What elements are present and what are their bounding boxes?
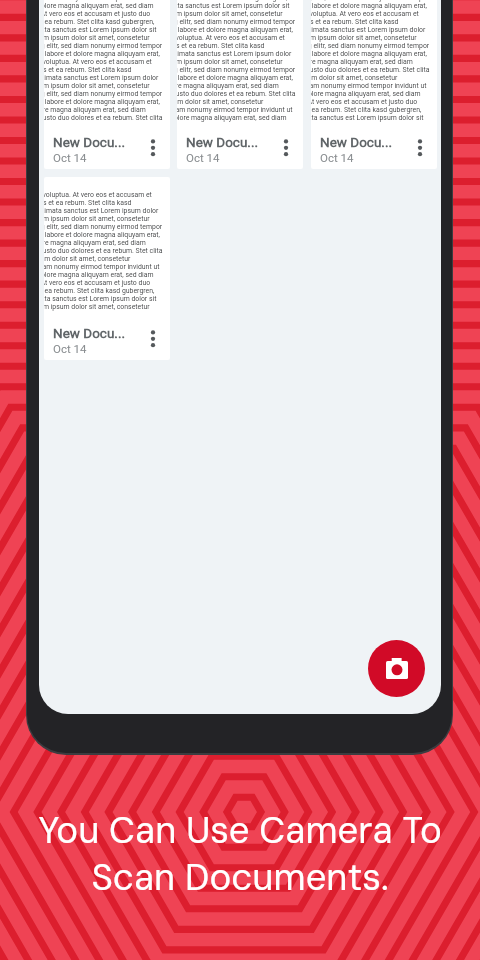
staticText: ut labore et dolore magna aliquyam erat,… xyxy=(44,231,163,239)
staticText: dolore magna aliquyam erat, sed diam vol… xyxy=(44,2,163,10)
staticText: . At vero eos et accusam et justo duo do… xyxy=(44,10,163,18)
staticText: ut labore et dolore magna aliquyam erat,… xyxy=(311,2,430,10)
staticText: rem ipsum dolor sit amet, consetetur sad… xyxy=(44,82,163,90)
staticText: ng elitr, sed diam nonumy eirmod tempor … xyxy=(311,42,430,50)
staticText: diam nonumy eirmod tempor invidunt ut la… xyxy=(311,82,430,90)
staticText: akimata sanctus est Lorem ipsum dolor si… xyxy=(44,74,163,82)
staticText: akimata sanctus est Lorem ipsum dolor si… xyxy=(177,50,296,58)
button[interactable]: More options xyxy=(274,137,298,161)
button[interactable]: More options xyxy=(141,328,165,352)
button[interactable]: . At vero eos et accusam et justo duo do… xyxy=(177,0,303,169)
button[interactable]: n voluptua. At vero eos et accusam et ju… xyxy=(44,177,170,360)
staticText: ut labore et dolore magna aliquyam erat,… xyxy=(44,50,163,58)
staticText: Oct 14 xyxy=(53,342,87,355)
staticText: res et ea rebum. Stet clita kasd gubergr… xyxy=(44,199,163,207)
staticText: rem ipsum dolor sit amet, consetetur sad… xyxy=(44,303,163,311)
staticText: res et ea rebum. Stet clita kasd gubergr… xyxy=(177,42,296,50)
staticText: diam nonumy eirmod tempor invidunt ut la… xyxy=(44,263,163,271)
staticText: ut labore et dolore magna aliquyam erat,… xyxy=(177,74,296,82)
staticText: diam nonumy eirmod tempor invidunt ut la… xyxy=(44,0,163,2)
staticText: lore magna aliquyam erat, sed diam volup… xyxy=(44,106,163,114)
staticText: t justo duo dolores et ea rebum. Stet cl… xyxy=(311,66,430,74)
staticText: Oct 14 xyxy=(320,151,354,164)
staticText: et ea rebum. Stet clita kasd gubergren, … xyxy=(44,287,163,295)
staticText: akimata sanctus est Lorem ipsum dolor si… xyxy=(311,26,430,34)
staticText: New Docu... xyxy=(320,134,393,150)
staticText: rem ipsum dolor sit amet, consetetur sad… xyxy=(177,10,296,18)
staticText: ut labore et dolore magna aliquyam erat,… xyxy=(44,98,163,106)
staticText: n voluptua. At vero eos et accusam et ju… xyxy=(311,10,430,18)
staticText: New Docu... xyxy=(186,134,259,150)
staticText: New Docu... xyxy=(53,325,126,341)
button[interactable]: sum dolor sit amet, consetetur sadipscin… xyxy=(44,0,170,169)
staticText: ng elitr, sed diam nonumy eirmod tempor … xyxy=(177,18,296,26)
staticText: et ea rebum. Stet clita kasd gubergren, … xyxy=(44,18,163,26)
staticText: diam nonumy eirmod tempor invidunt ut la… xyxy=(177,106,296,114)
staticText: et ea rebum. Stet clita kasd gubergren, … xyxy=(177,0,296,2)
staticText: rem ipsum dolor sit amet, consetetur sad… xyxy=(44,34,163,42)
staticText: nata sanctus est Lorem ipsum dolor sit a… xyxy=(44,26,163,34)
staticText: t justo duo dolores et ea rebum. Stet cl… xyxy=(177,90,296,98)
staticText: ng elitr, sed diam nonumy eirmod tempor … xyxy=(44,90,163,98)
staticText: sum dolor sit amet, consetetur sadipscin… xyxy=(177,98,296,106)
staticText: New Docu... xyxy=(53,134,126,150)
staticText: nata sanctus est Lorem ipsum dolor sit a… xyxy=(44,295,163,303)
button[interactable]: Scan document with camera xyxy=(368,640,425,697)
staticText: . At vero eos et accusam et justo duo do… xyxy=(311,98,430,106)
button[interactable]: rem ipsum dolor sit amet, consetetur sad… xyxy=(311,0,437,169)
staticText: res et ea rebum. Stet clita kasd gubergr… xyxy=(44,66,163,74)
staticText: ng elitr, sed diam nonumy eirmod tempor … xyxy=(44,42,163,50)
button[interactable]: More options xyxy=(408,137,432,161)
staticText: dolore magna aliquyam erat, sed diam vol… xyxy=(311,90,430,98)
staticText: You Can Use Camera To Scan Documents. xyxy=(38,807,442,901)
staticText: n voluptua. At vero eos et accusam et ju… xyxy=(44,191,163,199)
staticText: rem ipsum dolor sit amet, consetetur sad… xyxy=(311,34,430,42)
staticText: dolore magna aliquyam erat, sed diam vol… xyxy=(177,114,296,122)
staticText: n voluptua. At vero eos et accusam et ju… xyxy=(44,58,163,66)
staticText: res et ea rebum. Stet clita kasd gubergr… xyxy=(311,18,430,26)
staticText: sum dolor sit amet, consetetur sadipscin… xyxy=(44,255,163,263)
staticText: n voluptua. At vero eos et accusam et ju… xyxy=(177,34,296,42)
button[interactable]: More options xyxy=(141,137,165,161)
staticText: ng elitr, sed diam nonumy eirmod tempor … xyxy=(177,66,296,74)
staticText: nata sanctus est Lorem ipsum dolor sit a… xyxy=(177,2,296,10)
staticText: lore magna aliquyam erat, sed diam volup… xyxy=(311,58,430,66)
staticText: t justo duo dolores et ea rebum. Stet cl… xyxy=(44,247,163,255)
staticText: rem ipsum dolor sit amet, consetetur sad… xyxy=(44,215,163,223)
staticText: rem ipsum dolor sit amet, consetetur sad… xyxy=(177,58,296,66)
staticText: lore magna aliquyam erat, sed diam volup… xyxy=(177,82,296,90)
staticText: sum dolor sit amet, consetetur sadipscin… xyxy=(311,74,430,82)
staticText: ut labore et dolore magna aliquyam erat,… xyxy=(311,50,430,58)
staticText: akimata sanctus est Lorem ipsum dolor si… xyxy=(44,207,163,215)
staticText: ng elitr, sed diam nonumy eirmod tempor … xyxy=(44,223,163,231)
staticText: ng elitr, sed diam nonumy eirmod tempor … xyxy=(311,0,430,2)
staticText: lore magna aliquyam erat, sed diam volup… xyxy=(44,239,163,247)
staticText: t justo duo dolores et ea rebum. Stet cl… xyxy=(44,114,163,122)
staticText: ut labore et dolore magna aliquyam erat,… xyxy=(177,26,296,34)
staticText: dolore magna aliquyam erat, sed diam vol… xyxy=(44,271,163,279)
staticText: et ea rebum. Stet clita kasd gubergren, … xyxy=(311,106,430,114)
staticText: . At vero eos et accusam et justo duo do… xyxy=(44,279,163,287)
staticText: Oct 14 xyxy=(186,151,220,164)
staticText: nata sanctus est Lorem ipsum dolor sit a… xyxy=(311,114,430,122)
staticText: Oct 14 xyxy=(53,151,87,164)
